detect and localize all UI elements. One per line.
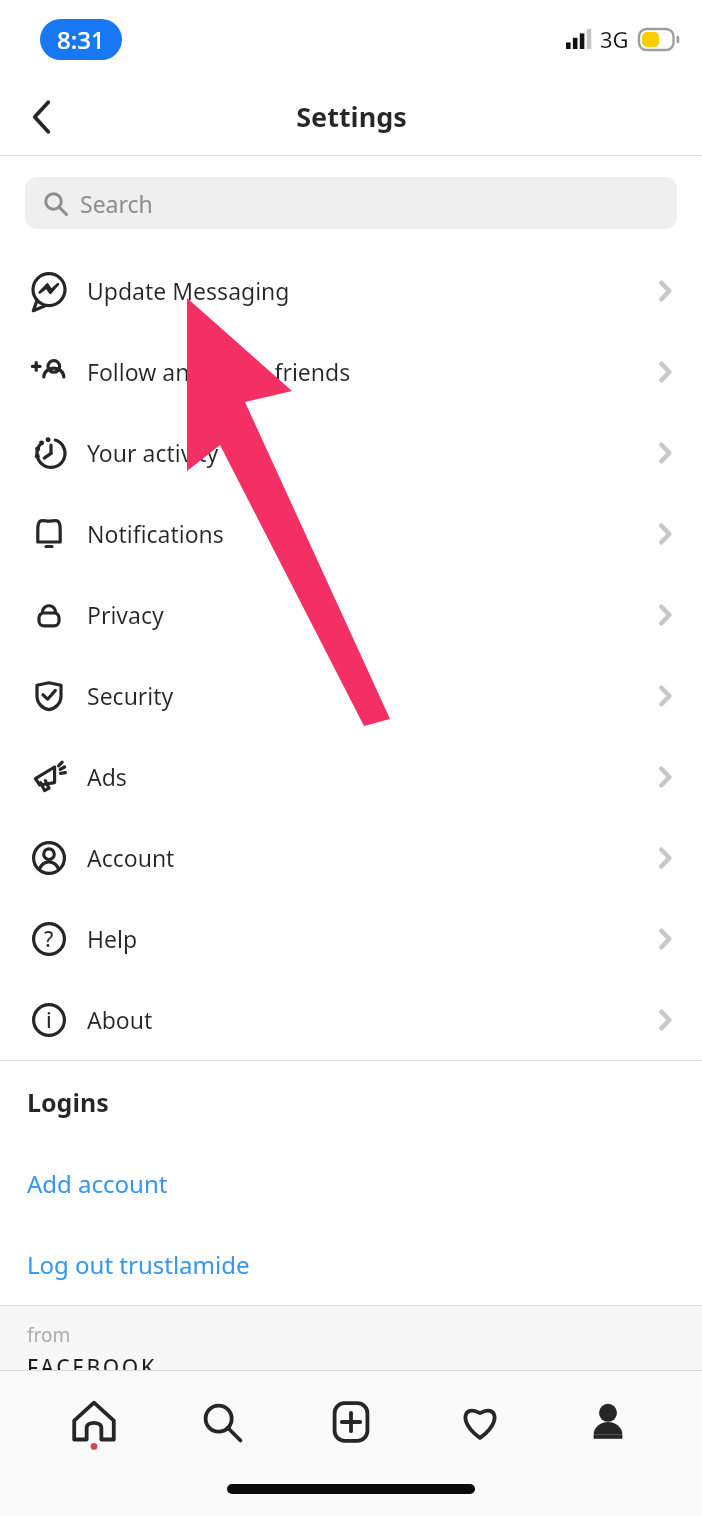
staticText: Ads [87, 761, 127, 792]
staticText: Account [87, 842, 175, 873]
staticText: Update Messaging [87, 275, 290, 306]
staticText: Help [87, 923, 138, 954]
button[interactable]: Account [0, 817, 702, 898]
staticText: Log out trustlamide [27, 1248, 250, 1281]
button[interactable]: Search [25, 177, 677, 229]
button[interactable]: Notifications [0, 493, 702, 574]
button[interactable]: Activity [445, 1387, 515, 1457]
button[interactable]: Security [0, 655, 702, 736]
staticText: from [27, 1322, 71, 1348]
staticText: Your activity [87, 437, 219, 468]
button[interactable]: Follow and invite friends [0, 331, 702, 412]
staticText: Settings [296, 98, 407, 135]
button[interactable]: Privacy [0, 574, 702, 655]
staticText: Privacy [87, 599, 164, 630]
button[interactable]: ? [0, 898, 702, 979]
staticText: About [87, 1004, 153, 1035]
button[interactable]: Log out trustlamide [0, 1224, 702, 1305]
staticText: 8:31 [57, 23, 105, 56]
staticText: ? [44, 925, 54, 954]
staticText: Add account [27, 1167, 168, 1200]
staticText: Security [87, 680, 174, 711]
button[interactable]: i [0, 979, 702, 1060]
staticText: Follow and invite friends [87, 356, 351, 387]
staticText: i [46, 1006, 52, 1035]
button[interactable]: Back [14, 89, 70, 145]
button[interactable]: Home [59, 1387, 129, 1457]
button[interactable]: Search [187, 1387, 257, 1457]
staticText: FACEBOOK [27, 1353, 157, 1370]
button[interactable]: Profile [573, 1387, 643, 1457]
button[interactable]: Your activity [0, 412, 702, 493]
button[interactable]: Create new post [316, 1387, 386, 1457]
staticText: Logins [27, 1085, 109, 1119]
button[interactable]: Ads [0, 736, 702, 817]
staticText: Search [80, 188, 153, 219]
button[interactable]: Add account [0, 1143, 702, 1224]
staticText: Notifications [87, 518, 224, 549]
staticText: 3G [600, 24, 629, 54]
button[interactable]: Update Messaging [0, 250, 702, 331]
